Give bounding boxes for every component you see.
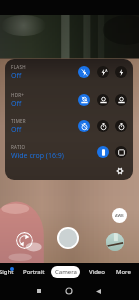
button[interactable]: HDR+ option 2 <box>97 94 109 106</box>
button[interactable]: Video <box>85 266 109 278</box>
staticText: HDR+ <box>11 92 25 98</box>
button[interactable]: HDR+ option 3 <box>115 94 127 106</box>
button[interactable]: Portrait <box>20 266 48 278</box>
button[interactable]: Switch camera <box>16 232 33 249</box>
button[interactable]: More settings <box>114 165 126 177</box>
button[interactable]: TIMER option 1 <box>78 120 90 132</box>
staticText: Portrait <box>23 268 45 276</box>
button[interactable]: FLASH option 3 <box>115 66 127 78</box>
staticText: Sight <box>0 268 14 276</box>
button[interactable]: Back <box>90 283 106 299</box>
button[interactable]: Recents <box>31 283 47 299</box>
button[interactable]: Shutter <box>57 227 79 249</box>
staticText: Off <box>11 99 22 109</box>
button[interactable]: Sight <box>0 266 18 278</box>
staticText: Video <box>89 268 105 276</box>
button[interactable]: More <box>111 266 135 278</box>
staticText: TIMER <box>11 118 26 124</box>
button[interactable]: Auto white balance <box>112 208 127 223</box>
staticText: Wide crop (16:9) <box>11 151 64 161</box>
staticText: FLASH <box>11 64 26 70</box>
staticText: Off <box>11 125 22 135</box>
button[interactable]: FLASH option 1 <box>78 66 90 78</box>
button[interactable]: HDR+ option 1 <box>78 94 90 106</box>
staticText: RATIO <box>11 144 26 150</box>
button[interactable]: Home <box>61 283 77 299</box>
button[interactable]: Camera <box>51 266 80 278</box>
button[interactable]: TIMER option 2 <box>97 120 109 132</box>
staticText: Off <box>11 71 22 81</box>
button[interactable]: RATIO option 2 <box>115 146 127 158</box>
button[interactable]: Gallery <box>106 233 124 251</box>
button[interactable]: TIMER option 3 <box>115 120 127 132</box>
staticText: AWB <box>115 213 124 218</box>
staticText: Camera <box>55 268 77 276</box>
button[interactable]: RATIO option 1 <box>97 146 109 158</box>
button[interactable]: FLASH option 2 <box>97 66 109 78</box>
staticText: More <box>116 268 131 276</box>
